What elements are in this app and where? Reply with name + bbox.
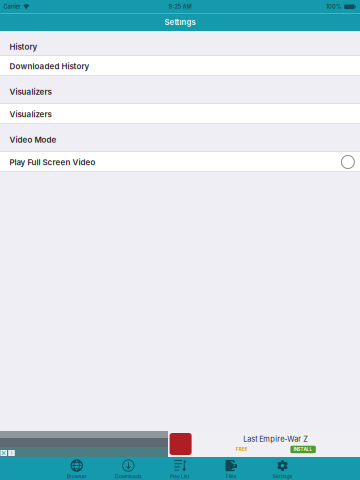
staticText: FREE (236, 447, 248, 452)
button[interactable]: Browser (52, 457, 102, 480)
button[interactable]: Visualizers (0, 76, 360, 104)
staticText: Play List (170, 473, 190, 479)
staticText: Play Full Screen Video (9, 158, 95, 167)
staticText: Browser (67, 473, 87, 479)
button[interactable]: i (0, 431, 360, 457)
button[interactable]: Settings (257, 457, 307, 480)
staticText: Last Empire-War Z (243, 434, 308, 443)
staticText: Visualizers (9, 110, 51, 119)
button[interactable]: History (0, 31, 360, 56)
staticText: Downloaded History (9, 62, 89, 71)
button[interactable]: Video Mode (0, 124, 360, 152)
button[interactable]: Files (206, 457, 256, 480)
button[interactable]: Play List (155, 457, 205, 480)
button[interactable]: Play Full Screen Video (0, 152, 360, 172)
button[interactable]: Downloads (103, 457, 153, 480)
staticText: Video Mode (9, 135, 56, 145)
staticText: Visualizers (9, 87, 51, 97)
staticText: Settings (272, 473, 292, 479)
button[interactable]: Downloaded History (0, 56, 360, 76)
staticText: 100% (326, 3, 342, 10)
staticText: Downloads (115, 473, 142, 479)
staticText: INSTALL (294, 447, 313, 452)
staticText: i (11, 450, 12, 456)
button[interactable]: Visualizers (0, 104, 360, 124)
staticText: 9:25 AM (168, 3, 191, 10)
staticText: Carrier (4, 3, 21, 10)
staticText: Files (226, 473, 237, 479)
staticText: History (9, 42, 37, 52)
staticText: Settings (164, 18, 195, 27)
